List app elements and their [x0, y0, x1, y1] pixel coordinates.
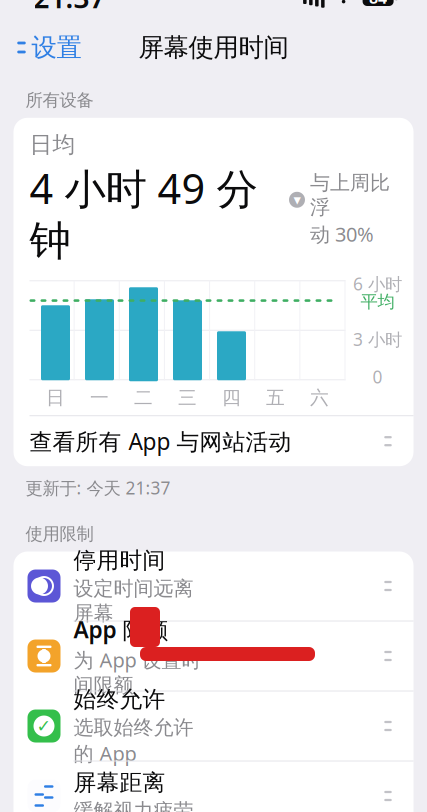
staticText: 平均 — [360, 291, 394, 312]
staticText: 缓解视力疲劳 — [73, 799, 193, 812]
staticText: 84 — [369, 0, 387, 8]
staticText: 日 — [46, 386, 65, 409]
button[interactable]: 停用时间 — [13, 551, 413, 621]
staticText: 四 — [222, 386, 241, 409]
staticText: 始终允许 — [73, 685, 165, 713]
staticText: 选取始终允许的 App — [73, 715, 193, 766]
staticText: 一 — [90, 386, 109, 409]
staticText: 6 小时 — [353, 272, 402, 295]
staticText: 设置 — [31, 32, 81, 63]
staticText: 二 — [134, 386, 153, 409]
button[interactable]: 设置 — [0, 24, 89, 71]
staticText: ✓ — [36, 716, 51, 736]
button[interactable]: 屏幕距离 — [13, 761, 413, 812]
staticText: App 限额 — [73, 614, 168, 644]
staticText: 设定时间远离屏幕 — [73, 576, 193, 625]
staticText: ▾ — [293, 191, 300, 208]
button[interactable]: App 限额 — [13, 621, 413, 691]
staticText: 3 小时 — [353, 328, 402, 351]
staticText: 为 App 设置时间限额 — [73, 647, 201, 698]
staticText: 与上周比浮 — [310, 171, 390, 220]
staticText: 屏幕使用时间 — [138, 32, 288, 63]
staticText: 停用时间 — [73, 546, 165, 574]
staticText: 三 — [178, 386, 197, 409]
button[interactable]: 查看所有 App 与网站活动 — [13, 416, 413, 466]
staticText: 4 小时 49 分钟 — [29, 161, 257, 266]
staticText: 0 — [372, 365, 382, 388]
staticText: 查看所有 App 与网站活动 — [29, 426, 291, 456]
staticText: 使用限制 — [25, 523, 93, 544]
staticText: 21:37 — [33, 0, 105, 16]
staticText: 所有设备 — [25, 89, 93, 111]
staticText: 屏幕距离 — [73, 769, 165, 797]
staticText: 动 30% — [310, 221, 374, 247]
staticText: 更新于: 今天 21:37 — [25, 476, 170, 499]
staticText: 日均 — [29, 131, 75, 159]
staticText: 五 — [266, 386, 285, 409]
button[interactable]: ✓ — [13, 691, 413, 761]
staticText: 六 — [310, 386, 329, 409]
